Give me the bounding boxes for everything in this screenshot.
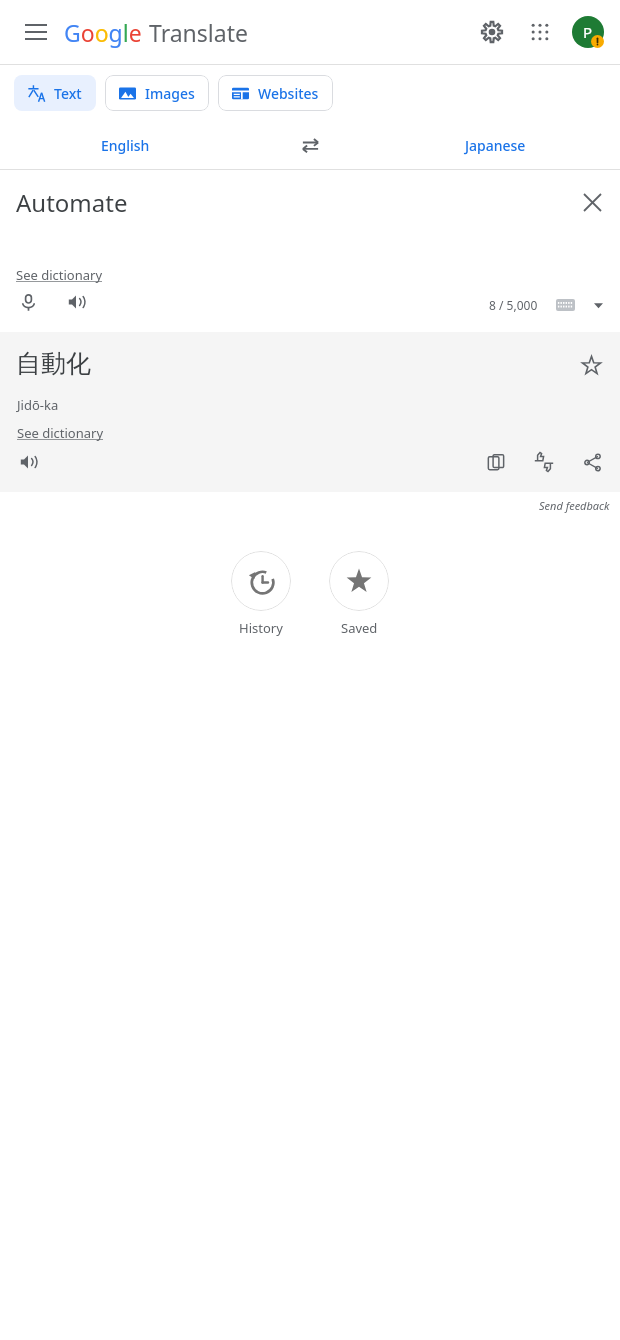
staticText: 8 / 5,000 — [489, 297, 538, 313]
button[interactable]: Google Account — [564, 8, 612, 56]
button[interactable]: Share translation — [570, 440, 614, 484]
staticText: See dictionary — [16, 266, 103, 284]
staticText: P — [583, 22, 593, 42]
staticText: 自動化 — [16, 348, 91, 379]
staticText: Automate — [16, 186, 128, 219]
button[interactable]: More input options — [586, 293, 610, 317]
button[interactable]: Google — [64, 17, 248, 48]
button[interactable]: English — [0, 121, 250, 169]
staticText: See dictionary — [17, 424, 104, 442]
staticText: Images — [145, 84, 195, 103]
staticText: Translate — [149, 17, 248, 48]
staticText: Send feedback — [539, 498, 610, 513]
staticText: Text — [54, 84, 82, 103]
button[interactable]: Swap languages — [288, 123, 332, 167]
button[interactable]: History — [231, 551, 291, 637]
button[interactable]: Main menu — [12, 8, 60, 56]
staticText: Jidō-ka — [17, 396, 59, 414]
button[interactable]: Listen to source text — [54, 280, 98, 324]
button[interactable]: Japanese — [370, 121, 620, 169]
staticText: Websites — [258, 84, 319, 103]
button[interactable]: Copy translation — [474, 440, 518, 484]
button[interactable]: Saved — [329, 551, 389, 637]
button[interactable]: Translate by voice — [6, 280, 50, 324]
button[interactable]: Google apps — [516, 8, 564, 56]
staticText: Google — [64, 17, 142, 48]
staticText: English — [101, 136, 150, 155]
button[interactable]: Rate this translation — [522, 440, 566, 484]
staticText: Japanese — [465, 136, 526, 155]
button[interactable]: Clear source text — [570, 180, 614, 224]
button[interactable]: Text — [14, 75, 96, 111]
button[interactable]: See dictionary — [17, 424, 104, 442]
button[interactable]: Listen to translation — [6, 440, 50, 484]
button[interactable]: Keyboard — [552, 292, 578, 318]
button[interactable]: Websites — [218, 75, 333, 111]
button[interactable]: Images — [105, 75, 209, 111]
button[interactable]: Send feedback — [539, 498, 610, 513]
button[interactable]: Settings — [468, 8, 516, 56]
button[interactable]: Save translation — [570, 344, 612, 386]
staticText: History — [239, 619, 283, 637]
staticText: Saved — [341, 619, 378, 637]
button[interactable]: See dictionary — [16, 266, 103, 284]
